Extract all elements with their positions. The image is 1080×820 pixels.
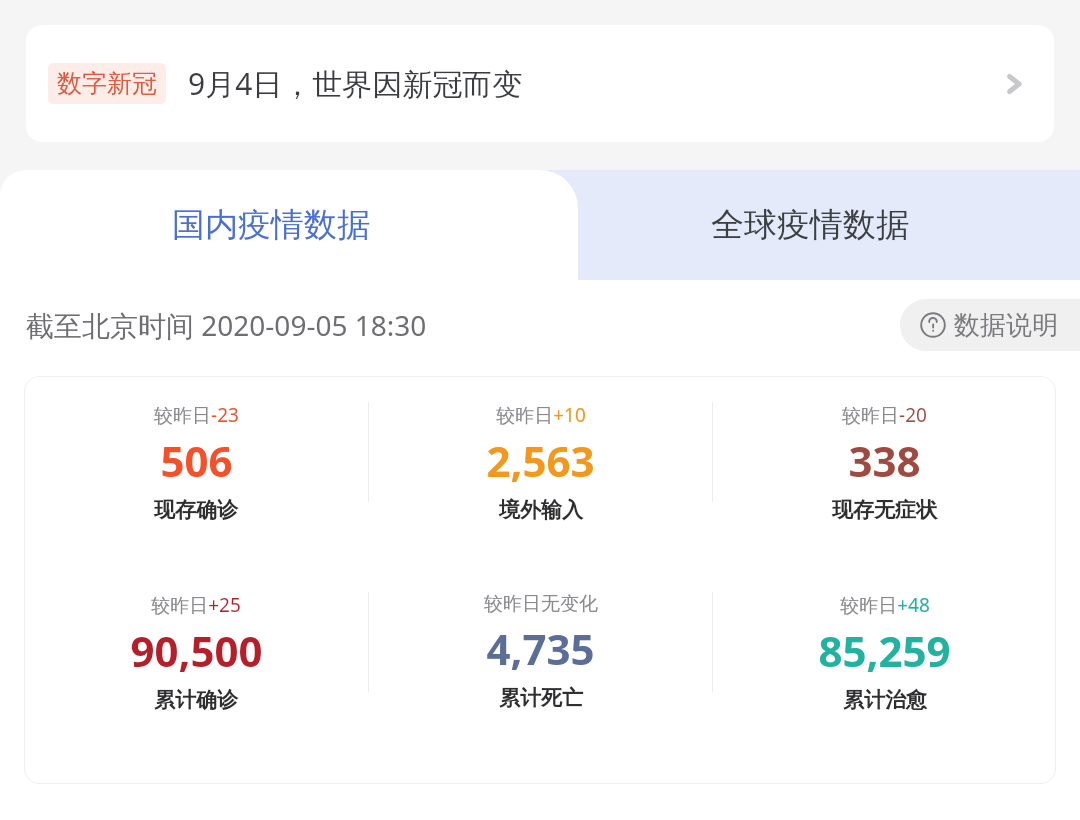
button[interactable]: 国内疫情数据 xyxy=(0,170,578,280)
staticText: 截至北京时间 2020-09-05 18:30 xyxy=(26,306,427,344)
staticText: 国内疫情数据 xyxy=(172,204,370,246)
button[interactable]: 较昨日-20 xyxy=(713,402,1056,523)
staticText: 数据说明 xyxy=(954,309,1058,342)
button[interactable]: 较昨日无变化 xyxy=(369,592,712,711)
staticText: 数字新冠 xyxy=(57,68,157,99)
button[interactable]: 全球疫情数据 xyxy=(540,170,1080,280)
button[interactable]: 较昨日+48 xyxy=(713,592,1056,713)
staticText: 较昨日-20 xyxy=(842,402,927,428)
button[interactable]: 数据说明 xyxy=(900,299,1080,351)
staticText: 较昨日无变化 xyxy=(484,592,598,616)
staticText: 较昨日-23 xyxy=(154,402,239,428)
button[interactable]: 较昨日-23 xyxy=(24,402,368,523)
staticText: 338 xyxy=(848,432,921,489)
staticText: 全球疫情数据 xyxy=(711,204,909,246)
other: 展开 xyxy=(998,67,1032,101)
staticText: 累计确诊 xyxy=(154,687,238,713)
staticText: 2,563 xyxy=(486,432,595,489)
staticText: 境外输入 xyxy=(499,497,583,523)
button[interactable]: 数字新冠 xyxy=(26,25,1054,142)
staticText: 较昨日+10 xyxy=(496,402,586,428)
staticText: 506 xyxy=(160,432,233,489)
staticText: 9月4日，世界因新冠而变 xyxy=(188,63,998,104)
staticText: 累计治愈 xyxy=(843,687,927,713)
button[interactable]: 较昨日+10 xyxy=(369,402,712,523)
staticText: 较昨日+25 xyxy=(151,592,241,618)
staticText: 现存无症状 xyxy=(832,497,937,523)
staticText: 较昨日+48 xyxy=(840,592,930,618)
button[interactable]: 较昨日+25 xyxy=(24,592,368,713)
staticText: 90,500 xyxy=(130,622,263,679)
staticText: 4,735 xyxy=(486,620,595,677)
staticText: 85,259 xyxy=(818,622,951,679)
staticText: 现存确诊 xyxy=(154,497,238,523)
staticText: 累计死亡 xyxy=(499,685,583,711)
